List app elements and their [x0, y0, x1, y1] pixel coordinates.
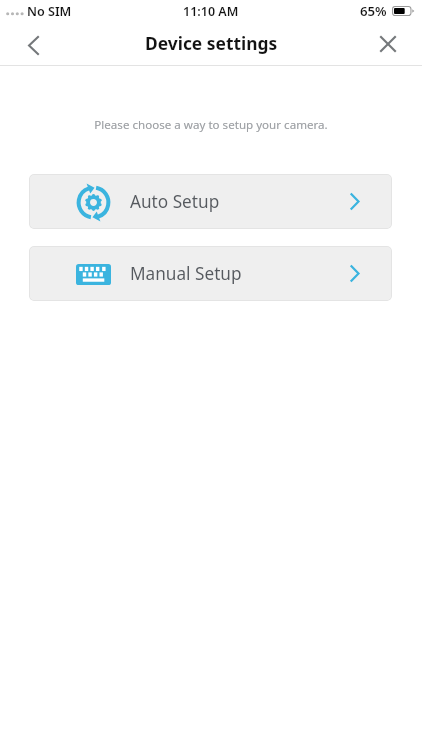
staticText: 11:10 AM	[183, 3, 239, 20]
button[interactable]: Close	[366, 22, 422, 66]
staticText: Auto Setup	[130, 190, 220, 213]
staticText: No SIM	[27, 3, 72, 20]
button[interactable]: Auto Setup	[29, 174, 392, 229]
staticText: Please choose a way to setup your camera…	[0, 117, 422, 133]
staticText: 65%	[360, 2, 387, 20]
button[interactable]: Manual Setup	[29, 246, 392, 301]
button[interactable]: Back	[0, 22, 56, 66]
staticText: Manual Setup	[130, 262, 242, 285]
staticText: Device settings	[145, 31, 278, 55]
